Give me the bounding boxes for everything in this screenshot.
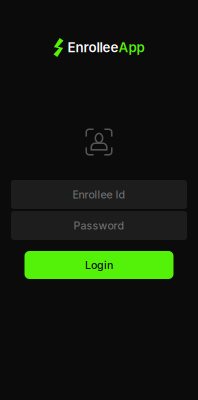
button[interactable]: Login: [24, 251, 173, 279]
staticText: Enrollee Id: [72, 188, 125, 201]
staticText: App: [118, 39, 144, 55]
staticText: Enrollee: [67, 39, 118, 55]
button[interactable]: Scan face to sign in: [77, 120, 121, 164]
staticText: Password: [73, 219, 124, 232]
button[interactable]: Password: [11, 211, 187, 240]
staticText: Login: [85, 258, 113, 271]
button[interactable]: Enrollee Id: [11, 180, 187, 209]
